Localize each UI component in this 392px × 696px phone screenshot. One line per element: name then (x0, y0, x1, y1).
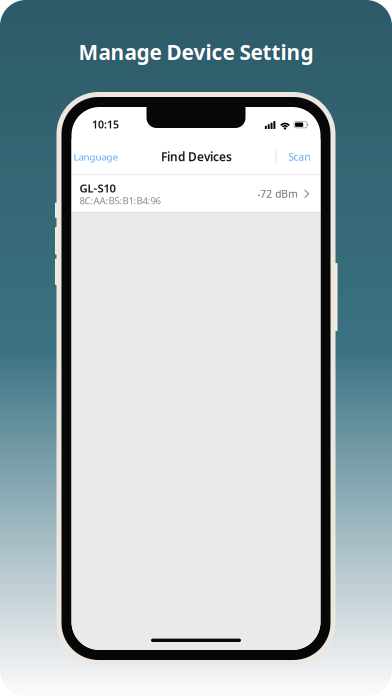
staticText: 8C:AA:B5:B1:B4:96 (79, 194, 160, 207)
staticText: Manage Device Setting (78, 38, 313, 66)
staticText: Scan (288, 150, 310, 163)
staticText: GL-S10 (79, 181, 115, 196)
button[interactable]: GL-S10 (71, 175, 320, 212)
button[interactable]: Language (73, 150, 117, 163)
staticText: Language (73, 150, 117, 163)
staticText: 10:15 (92, 117, 119, 131)
button[interactable]: Scan (288, 150, 310, 163)
staticText: -72 dBm (257, 187, 297, 201)
staticText: Find Devices (161, 149, 232, 165)
